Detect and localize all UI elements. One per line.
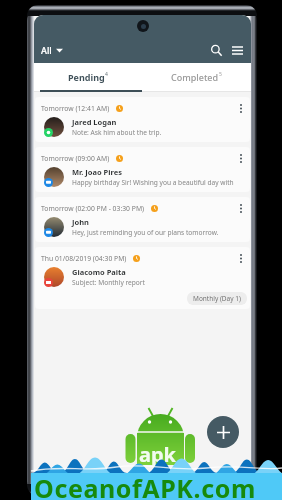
button[interactable]: All: [34, 39, 71, 61]
staticText: 5: [219, 71, 222, 78]
button[interactable]: Menu: [227, 41, 251, 60]
staticText: 4: [105, 71, 108, 78]
button[interactable]: Tomorrow (12:41 AM): [35, 97, 250, 142]
staticText: Thu 01/08/2019 (04:30 PM): [41, 254, 127, 263]
button[interactable]: More options: [237, 103, 245, 114]
staticText: Tomorrow (12:41 AM): [41, 104, 110, 113]
button[interactable]: Tomorrow (09:00 AM): [35, 147, 250, 192]
staticText: Mr. Joao Pires: [72, 167, 122, 177]
staticText: Completed: [171, 71, 219, 83]
staticText: Subject: Monthly report: [72, 278, 145, 287]
button[interactable]: Tomorrow (02:00 PM - 03:30 PM): [35, 197, 250, 242]
staticText: John: [72, 217, 89, 227]
button[interactable]: Completed: [142, 63, 251, 92]
button[interactable]: More options: [237, 203, 245, 214]
staticText: Tomorrow (09:00 AM): [41, 154, 110, 163]
staticText: Monthly (Day 1): [193, 294, 241, 303]
button[interactable]: Thu 01/08/2019 (04:30 PM): [35, 247, 250, 309]
staticText: Tomorrow (02:00 PM - 03:30 PM): [41, 204, 145, 213]
staticText: Note: Ask him about the trip.: [72, 128, 162, 137]
staticText: Happy birthday Sir! Wishing you a beauti…: [72, 178, 245, 187]
staticText: All: [41, 44, 52, 56]
button[interactable]: Add reminder: [207, 416, 239, 448]
button[interactable]: More options: [237, 153, 245, 164]
button[interactable]: Pending: [34, 63, 142, 92]
staticText: Giacomo Paita: [72, 267, 126, 277]
button[interactable]: More options: [237, 253, 245, 264]
button[interactable]: Search: [206, 40, 227, 61]
staticText: Jared Logan: [72, 117, 117, 127]
staticText: Hey, just reminding you of our plans tom…: [72, 228, 219, 237]
staticText: OceanofAPK.com: [34, 471, 256, 500]
staticText: apk: [139, 441, 177, 468]
staticText: Pending: [68, 71, 105, 83]
